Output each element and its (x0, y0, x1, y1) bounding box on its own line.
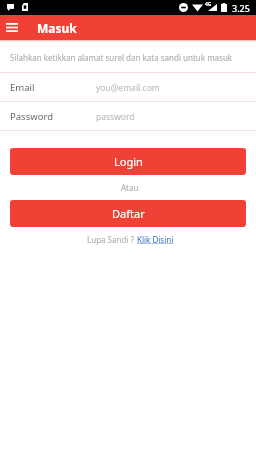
staticText: you@email.com (96, 82, 160, 94)
button[interactable]: Email (0, 73, 256, 102)
staticText: Masuk (37, 20, 77, 36)
button[interactable]: Menu (6, 23, 18, 32)
staticText: Silahkan ketikkan alamat surel dan kata … (10, 52, 233, 63)
staticText: Atau (121, 182, 139, 193)
button[interactable]: Klik Disini (137, 234, 174, 245)
staticText: Email (10, 81, 96, 94)
staticText: 4G (205, 1, 212, 8)
staticText: Daftar (112, 206, 145, 221)
staticText: password (96, 111, 135, 123)
button[interactable]: Login (10, 148, 246, 175)
staticText: Lupa Sandi ? (87, 234, 137, 245)
staticText: Login (114, 154, 143, 169)
button[interactable]: Password (0, 102, 256, 131)
staticText: Klik Disini (137, 234, 174, 245)
staticText: Password (10, 110, 96, 123)
button[interactable]: Daftar (10, 200, 246, 227)
staticText: 3.25 (232, 2, 250, 14)
